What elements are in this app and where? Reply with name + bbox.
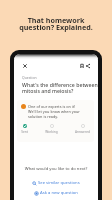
button[interactable]: Close <box>22 63 28 69</box>
staticText: That homework question? Explained. <box>0 15 112 33</box>
staticText: What would you like to do next? <box>14 166 98 172</box>
staticText: See similar questions <box>38 180 80 186</box>
staticText: Ask a new question <box>40 190 78 196</box>
staticText: Working <box>45 130 58 134</box>
button[interactable]: Share <box>85 63 91 69</box>
staticText: Sent <box>21 130 28 134</box>
staticText: One of our experts is on it! We'll let y… <box>28 104 80 119</box>
staticText: Question <box>22 75 37 80</box>
button[interactable]: Ask a new question <box>14 190 98 196</box>
button[interactable]: Bookmark <box>79 63 85 69</box>
button[interactable]: See similar questions <box>14 180 98 186</box>
staticText: What's the difference between mitosis an… <box>22 81 98 94</box>
staticText: Answered <box>75 130 90 134</box>
